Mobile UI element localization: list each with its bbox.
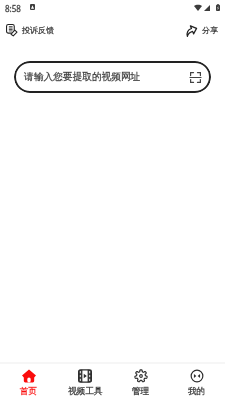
staticText: 投诉反馈 [22,25,54,35]
button[interactable]: 我的 [169,364,225,400]
staticText: 8:58 [5,3,21,14]
staticText: 首页 [20,386,38,397]
staticText: 视频工具 [68,386,103,397]
button[interactable]: 投诉反馈 [3,19,57,39]
staticText: 我的 [188,386,206,397]
button[interactable]: 请输入您要提取的视频网址 [14,61,211,93]
staticText: 首页 [20,386,38,397]
button[interactable]: 分享 [182,19,221,39]
staticText: 分享 [202,25,218,35]
staticText: 管理 [132,386,150,397]
staticText: 管理 [132,386,150,397]
staticText: 我的 [188,386,206,397]
staticText: 请输入您要提取的视频网址 [24,71,141,83]
staticText: 8:58 [5,3,21,14]
other: Scan QR code [190,72,201,83]
button[interactable]: 管理 [113,364,169,400]
button[interactable]: 首页 [0,364,57,400]
button[interactable]: 视频工具 [57,364,113,400]
staticText: 视频工具 [68,386,103,397]
staticText: 请输入您要提取的视频网址 [24,71,141,83]
staticText: 投诉反馈 [22,25,54,35]
staticText: 分享 [202,25,218,35]
